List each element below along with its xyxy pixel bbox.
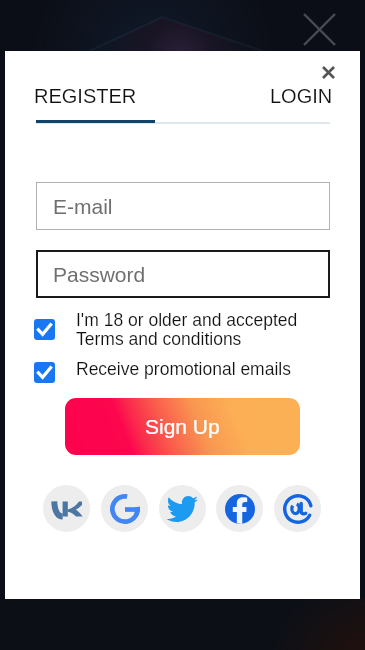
button[interactable]: Receive promotional emails <box>34 359 334 383</box>
button[interactable]: Close overlay <box>297 7 342 52</box>
button[interactable]: Sign Up <box>65 398 300 455</box>
staticText: Receive promotional emails <box>76 359 291 379</box>
staticText: Password <box>53 263 146 286</box>
button[interactable]: VK <box>43 485 90 532</box>
button[interactable]: Close dialog <box>316 60 340 84</box>
button[interactable]: E-mail <box>36 182 330 230</box>
button[interactable]: Google <box>101 485 148 532</box>
button[interactable]: Facebook <box>216 485 263 532</box>
button[interactable]: Password <box>36 250 330 298</box>
button[interactable]: REGISTER <box>34 79 153 113</box>
staticText: REGISTER <box>34 85 137 107</box>
staticText: E-mail <box>53 195 113 218</box>
button[interactable]: Twitter <box>159 485 206 532</box>
staticText: Sign Up <box>145 415 220 438</box>
staticText: LOGIN <box>270 85 333 107</box>
button[interactable]: I'm 18 or older and accepted Terms and c… <box>34 310 334 349</box>
staticText: I'm 18 or older and accepted Terms and c… <box>76 310 298 349</box>
button[interactable]: Email <box>274 485 321 532</box>
button[interactable]: LOGIN <box>213 79 333 113</box>
